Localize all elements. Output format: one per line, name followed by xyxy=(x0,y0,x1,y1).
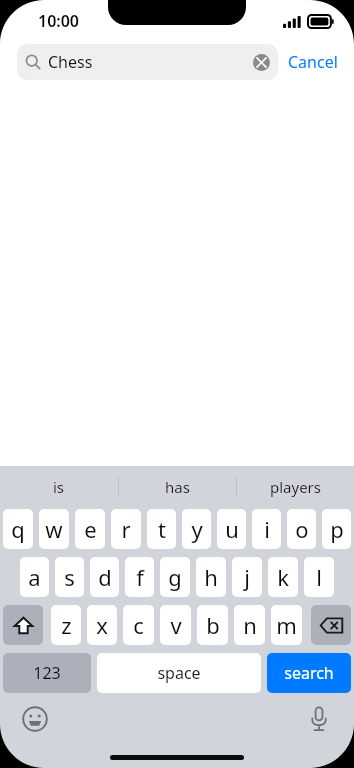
button[interactable]: a xyxy=(20,557,49,597)
button[interactable]: z xyxy=(51,605,81,645)
staticText: n xyxy=(243,610,257,640)
button[interactable]: v xyxy=(160,605,191,645)
button[interactable]: j xyxy=(232,557,262,597)
button[interactable]: s xyxy=(55,557,84,597)
staticText: y xyxy=(191,514,203,544)
staticText: v xyxy=(170,610,182,640)
staticText: w xyxy=(45,514,63,544)
button[interactable]: m xyxy=(271,605,302,645)
button[interactable]: Dictation xyxy=(302,702,336,736)
button[interactable]: Cancel xyxy=(278,51,340,73)
button[interactable]: r xyxy=(111,509,141,549)
staticText: d xyxy=(98,562,112,592)
button[interactable]: space xyxy=(97,653,261,693)
staticText: a xyxy=(28,562,41,592)
staticText: e xyxy=(84,514,97,544)
staticText: j xyxy=(244,562,250,592)
staticText: t xyxy=(158,514,166,544)
button[interactable]: o xyxy=(287,509,316,549)
button[interactable]: u xyxy=(217,509,246,549)
staticText: m xyxy=(276,610,297,640)
button[interactable]: k xyxy=(268,557,298,597)
button[interactable]: is xyxy=(0,466,118,508)
button[interactable]: e xyxy=(75,509,105,549)
staticText: x xyxy=(96,610,108,640)
staticText: Cancel xyxy=(288,51,338,73)
button[interactable]: p xyxy=(322,509,351,549)
button[interactable]: x xyxy=(87,605,117,645)
button[interactable]: g xyxy=(160,557,190,597)
button[interactable]: Clear text xyxy=(252,53,270,71)
staticText: g xyxy=(168,562,182,592)
button[interactable]: players xyxy=(237,466,354,508)
button[interactable]: Shift xyxy=(3,605,43,645)
staticText: search xyxy=(284,662,334,684)
button[interactable]: search xyxy=(267,653,351,693)
staticText: b xyxy=(206,610,220,640)
staticText: p xyxy=(330,514,344,544)
staticText: o xyxy=(295,514,309,544)
staticText: is xyxy=(53,477,65,497)
staticText: Chess xyxy=(48,51,252,73)
staticText: players xyxy=(270,477,322,497)
staticText: q xyxy=(11,514,25,544)
staticText: u xyxy=(225,514,239,544)
staticText: k xyxy=(277,562,289,592)
button[interactable]: has xyxy=(119,466,236,508)
staticText: z xyxy=(61,610,72,640)
button[interactable]: 123 xyxy=(3,653,91,693)
staticText: 123 xyxy=(33,662,61,684)
staticText: 10:00 xyxy=(38,10,80,32)
staticText: c xyxy=(133,610,144,640)
button[interactable]: t xyxy=(147,509,176,549)
button[interactable]: q xyxy=(3,509,33,549)
button[interactable]: b xyxy=(197,605,228,645)
staticText: space xyxy=(157,662,201,684)
staticText: s xyxy=(64,562,75,592)
button[interactable]: h xyxy=(196,557,226,597)
button[interactable]: f xyxy=(125,557,154,597)
button[interactable]: n xyxy=(234,605,265,645)
button[interactable]: Emoji keyboard xyxy=(18,702,52,736)
button[interactable]: y xyxy=(182,509,211,549)
staticText: r xyxy=(121,514,131,544)
button[interactable]: c xyxy=(123,605,154,645)
staticText: f xyxy=(136,562,144,592)
staticText: h xyxy=(204,562,218,592)
button[interactable]: Chess xyxy=(17,44,278,80)
button[interactable]: w xyxy=(39,509,69,549)
button[interactable]: Backspace xyxy=(311,605,351,645)
button[interactable]: i xyxy=(252,509,281,549)
button[interactable]: l xyxy=(304,557,334,597)
button[interactable]: d xyxy=(90,557,119,597)
staticText: has xyxy=(165,477,190,497)
staticText: l xyxy=(316,562,322,592)
staticText: i xyxy=(264,514,270,544)
